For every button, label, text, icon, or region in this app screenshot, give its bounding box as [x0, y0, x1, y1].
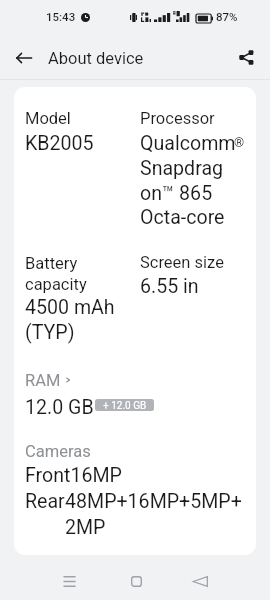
button[interactable]: RAM	[25, 369, 72, 390]
staticText: Cameras	[25, 440, 91, 461]
staticText: Battery capacity	[25, 252, 87, 294]
staticText: 48MP+16MP+5MP+	[65, 488, 242, 513]
staticText: Rear	[25, 488, 65, 513]
staticText: About device	[48, 47, 144, 68]
staticText: 87%	[216, 11, 238, 24]
staticText: ®	[234, 127, 245, 152]
staticText: 2MP	[65, 514, 106, 539]
staticText: 6.55 in	[140, 273, 199, 298]
staticText: Processor	[140, 107, 215, 128]
staticText: Snapdrag	[140, 155, 224, 180]
staticText: KB2005	[25, 130, 94, 155]
staticText: 4500 mAh (TYP)	[25, 294, 115, 344]
staticText: 12.0 GB	[25, 394, 94, 419]
staticText: Model	[25, 107, 71, 128]
button[interactable]: Recent apps	[47, 559, 91, 600]
staticText: Front16MP	[25, 462, 122, 487]
button[interactable]: Share	[232, 43, 260, 71]
staticText: Screen size	[140, 251, 224, 272]
staticText: Qualcomm	[140, 130, 236, 155]
button[interactable]: Home	[114, 559, 158, 600]
button[interactable]: Back	[10, 44, 38, 72]
button[interactable]: Back	[178, 559, 222, 600]
staticText: RAM	[25, 369, 61, 390]
staticText: Octa-core	[140, 204, 225, 229]
staticText: on™ 865	[140, 180, 213, 205]
staticText: 15:43	[46, 11, 76, 24]
staticText: + 12.0 GB	[103, 400, 147, 411]
